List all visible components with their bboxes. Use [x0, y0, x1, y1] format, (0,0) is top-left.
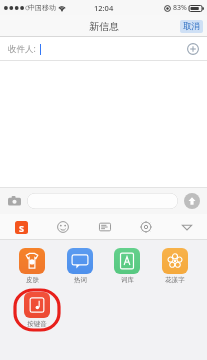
button[interactable]: Add contact	[185, 41, 201, 57]
button[interactable]: 热词	[60, 248, 100, 284]
staticText: 83%	[173, 3, 187, 13]
staticText: 新信息	[89, 20, 119, 33]
button[interactable]: 按键音	[17, 292, 57, 328]
button[interactable]: Emoji	[42, 214, 84, 240]
button[interactable]: Sogou input	[0, 214, 42, 240]
button[interactable]	[27, 193, 178, 209]
button[interactable]: 皮肤	[12, 248, 52, 284]
staticText: 花漾字	[165, 276, 185, 284]
staticText: 热词	[74, 276, 87, 284]
staticText: 中国移动	[28, 3, 56, 12]
staticText: 收件人:	[8, 43, 36, 55]
staticText: 皮肤	[26, 276, 39, 284]
staticText: 按键音	[27, 320, 47, 328]
button[interactable]: Camera	[6, 193, 22, 209]
button[interactable]: 取消	[180, 20, 203, 33]
staticText: 取消	[183, 21, 200, 32]
button[interactable]: Keyboard	[84, 214, 125, 240]
staticText: 词库	[121, 276, 134, 284]
staticText: S	[19, 222, 24, 234]
staticText: 12:04	[94, 3, 114, 13]
button[interactable]: Settings	[125, 214, 166, 240]
button[interactable]: 花漾字	[155, 248, 195, 284]
button[interactable]: 词库	[107, 248, 147, 284]
button[interactable]: Hide keyboard	[166, 214, 207, 240]
button[interactable]: Send	[183, 192, 201, 210]
